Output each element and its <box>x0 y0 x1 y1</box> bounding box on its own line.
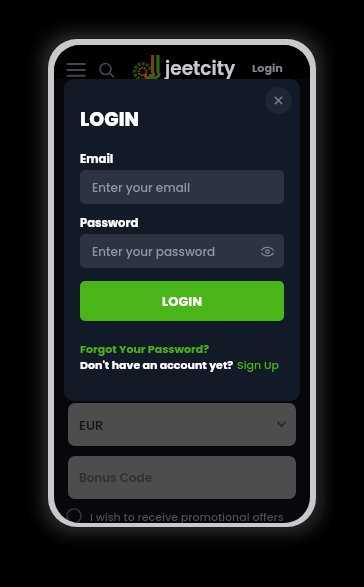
staticText: EUR <box>79 416 104 434</box>
button[interactable]: Close <box>265 87 292 114</box>
staticText: Enter your password <box>92 243 216 260</box>
staticText: Email <box>80 151 114 167</box>
staticText: LOGIN <box>162 292 202 310</box>
button[interactable]: LOGIN <box>80 281 284 321</box>
button[interactable]: Bonus Code <box>68 456 296 499</box>
button[interactable]: Login <box>252 60 283 76</box>
staticText: Password <box>80 215 139 231</box>
staticText: Forgot Your Password? <box>80 341 210 356</box>
button[interactable]: Enter your password <box>80 234 284 268</box>
staticText: Bonus Code <box>79 469 153 486</box>
staticText: Sign Up <box>237 357 280 372</box>
staticText: Don't have an account yet? <box>80 357 234 372</box>
staticText: Login <box>252 60 283 76</box>
button[interactable]: Menu <box>64 56 90 78</box>
staticText: I wish to receive promotional offers <box>90 509 284 523</box>
staticText: LOGIN <box>80 106 140 133</box>
button[interactable]: I wish to receive promotional offers <box>66 508 284 523</box>
button[interactable]: Enter your email <box>80 170 284 204</box>
button[interactable]: Show password <box>261 245 274 258</box>
button[interactable]: Search <box>96 57 118 79</box>
button[interactable]: Sign Up <box>237 357 280 372</box>
staticText: Enter your email <box>92 179 191 196</box>
staticText: jeetcity <box>165 55 236 81</box>
button[interactable]: EUR <box>68 403 296 446</box>
button[interactable]: Forgot Your Password? <box>80 341 210 356</box>
